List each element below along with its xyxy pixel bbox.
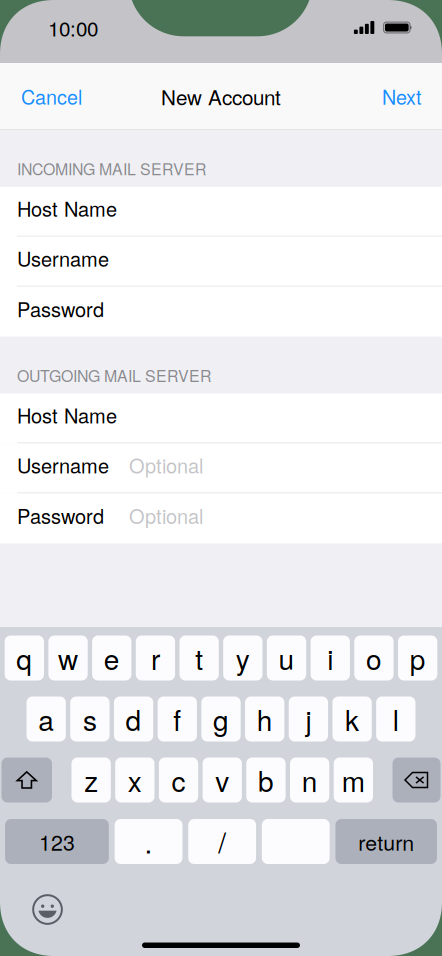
- staticText: Optional: [129, 451, 203, 479]
- button[interactable]: a: [26, 696, 66, 741]
- staticText: Host Name: [17, 401, 117, 429]
- staticText: OUTGOING MAIL SERVER: [17, 364, 211, 386]
- staticText: .: [145, 821, 153, 862]
- staticText: i: [327, 638, 333, 678]
- staticText: g: [213, 699, 229, 739]
- staticText: Host Name: [17, 194, 117, 222]
- button[interactable]: Delete: [392, 757, 440, 802]
- button[interactable]: i: [311, 635, 350, 680]
- button[interactable]: x: [115, 757, 154, 802]
- staticText: Next: [382, 82, 421, 110]
- button[interactable]: t: [179, 635, 219, 680]
- button[interactable]: o: [354, 635, 394, 680]
- button[interactable]: m: [334, 757, 373, 802]
- staticText: INCOMING MAIL SERVER: [17, 157, 206, 180]
- button[interactable]: Cancel: [17, 72, 86, 120]
- staticText: /: [218, 821, 226, 862]
- staticText: d: [126, 699, 142, 739]
- staticText: x: [128, 760, 142, 800]
- button[interactable]: z: [71, 757, 111, 802]
- staticText: v: [215, 760, 229, 800]
- staticText: u: [278, 638, 294, 678]
- staticText: New Account: [161, 81, 281, 111]
- button[interactable]: 123: [5, 819, 109, 864]
- button[interactable]: Shift: [1, 757, 52, 802]
- staticText: r: [151, 638, 160, 678]
- staticText: k: [345, 699, 359, 739]
- staticText: 10:00: [48, 13, 98, 42]
- button[interactable]: /: [188, 819, 256, 864]
- staticText: p: [410, 638, 426, 678]
- staticText: return: [358, 826, 414, 857]
- button[interactable]: Emoji: [26, 888, 69, 931]
- button[interactable]: h: [245, 696, 284, 741]
- staticText: Password: [17, 294, 104, 323]
- button[interactable]: y: [223, 635, 262, 680]
- staticText: n: [302, 760, 318, 800]
- staticText: a: [38, 699, 54, 739]
- staticText: t: [195, 638, 203, 678]
- staticText: l: [393, 699, 399, 739]
- button[interactable]: j: [289, 696, 328, 741]
- staticText: Username: [17, 451, 109, 479]
- button[interactable]: k: [332, 696, 372, 741]
- staticText: Username: [17, 244, 109, 272]
- button[interactable]: g: [201, 696, 241, 741]
- button[interactable]: l: [376, 696, 415, 741]
- staticText: b: [258, 760, 274, 800]
- staticText: Cancel: [21, 82, 82, 110]
- staticText: j: [305, 699, 311, 739]
- staticText: Optional: [129, 501, 203, 530]
- button[interactable]: r: [136, 635, 175, 680]
- button[interactable]: u: [267, 635, 306, 680]
- button[interactable]: Next: [378, 72, 425, 120]
- button[interactable]: [262, 819, 330, 864]
- button[interactable]: e: [92, 635, 131, 680]
- staticText: q: [16, 638, 32, 678]
- button[interactable]: s: [70, 696, 109, 741]
- staticText: 123: [39, 826, 75, 857]
- staticText: c: [171, 760, 185, 800]
- staticText: w: [58, 638, 78, 678]
- button[interactable]: f: [158, 696, 197, 741]
- staticText: f: [173, 699, 181, 739]
- button[interactable]: c: [159, 757, 198, 802]
- button[interactable]: p: [398, 635, 437, 680]
- staticText: o: [366, 638, 382, 678]
- button[interactable]: n: [290, 757, 329, 802]
- staticText: h: [257, 699, 273, 739]
- staticText: m: [342, 760, 365, 800]
- button[interactable]: .: [115, 819, 182, 864]
- button[interactable]: w: [48, 635, 88, 680]
- staticText: s: [83, 699, 97, 739]
- staticText: y: [236, 638, 250, 678]
- button[interactable]: b: [246, 757, 286, 802]
- staticText: Password: [17, 501, 104, 530]
- button[interactable]: d: [114, 696, 153, 741]
- button[interactable]: return: [335, 819, 437, 864]
- button[interactable]: q: [5, 635, 44, 680]
- button[interactable]: v: [203, 757, 242, 802]
- staticText: z: [84, 760, 98, 800]
- staticText: e: [104, 638, 120, 678]
